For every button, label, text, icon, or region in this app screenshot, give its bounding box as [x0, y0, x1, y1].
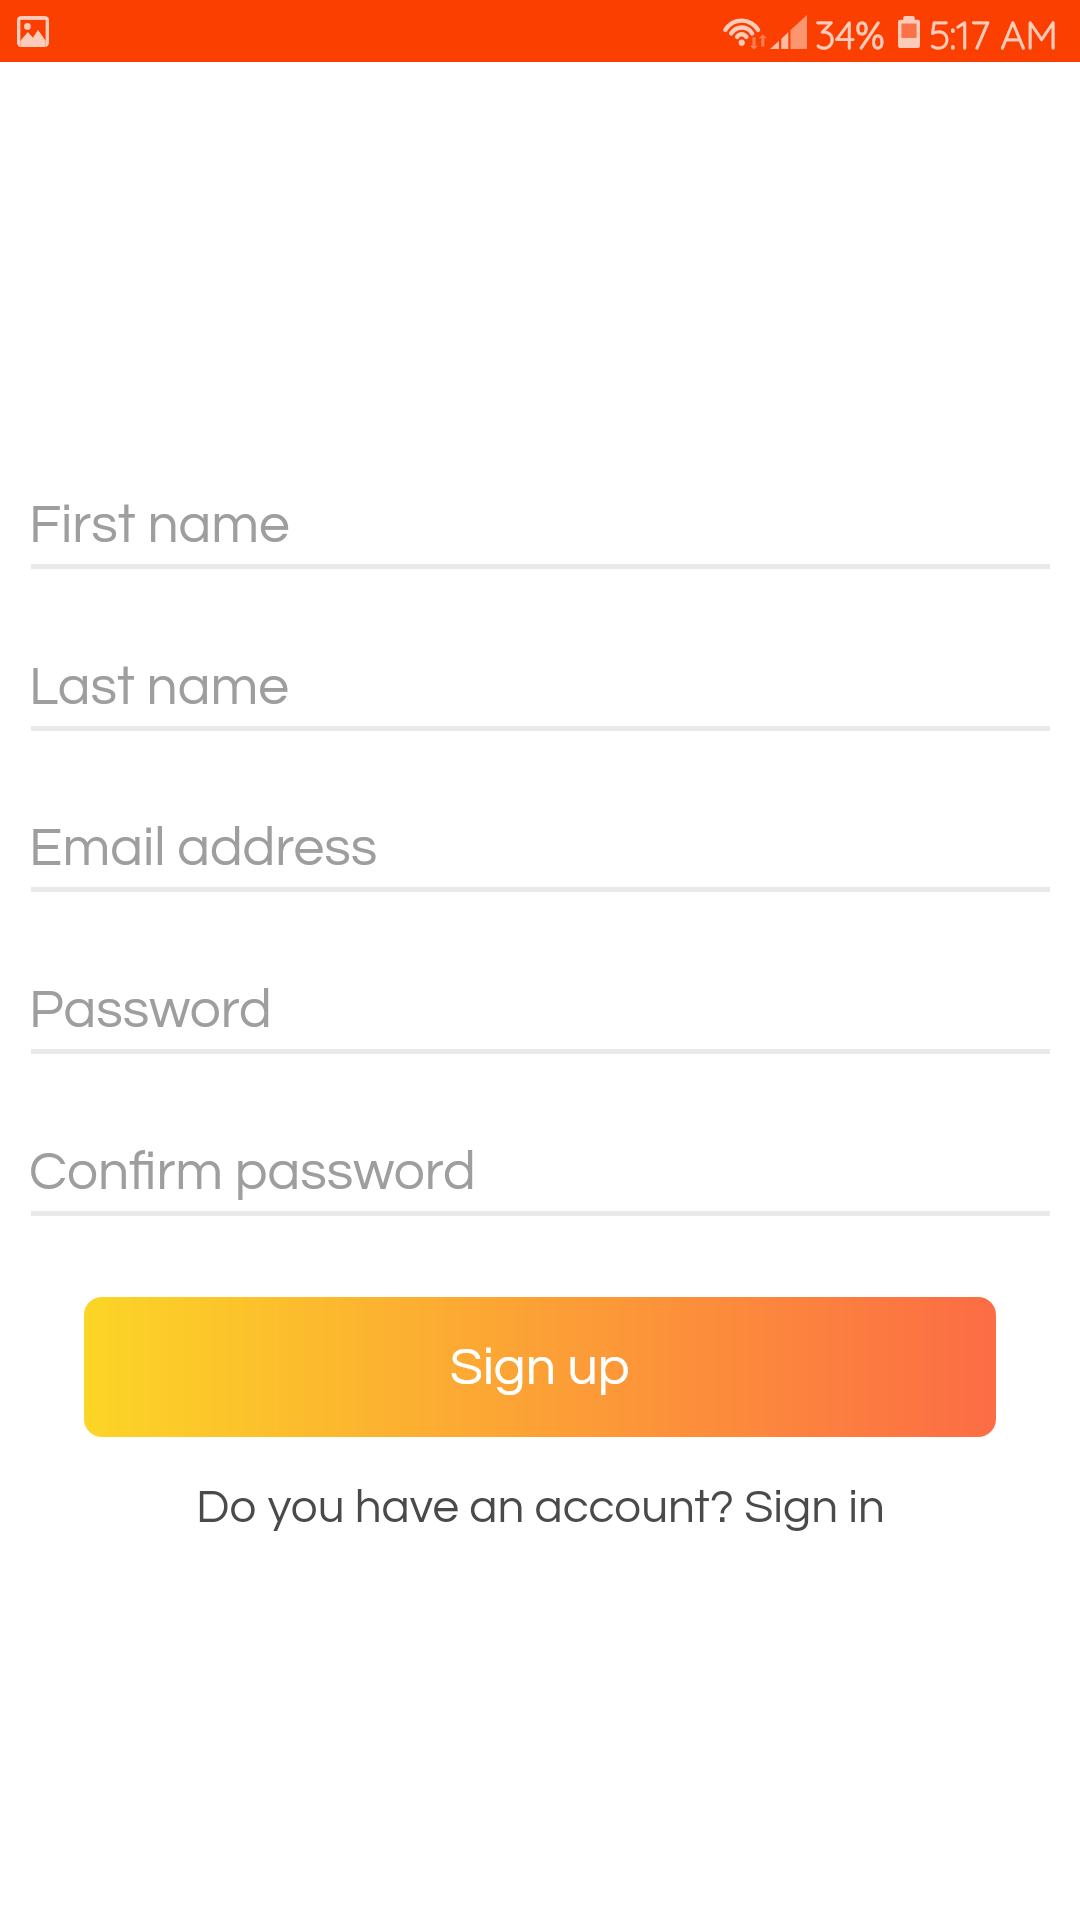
button[interactable]: Do you have an account? Sign in: [0, 1462, 1080, 1552]
staticText: Do you have an account? Sign in: [196, 1483, 885, 1532]
button[interactable]: Sign up: [84, 1297, 996, 1437]
staticText: Email address: [29, 820, 378, 877]
staticText: Password: [29, 982, 272, 1039]
other: Wi-Fi connected: [723, 14, 767, 49]
staticText: 34%: [815, 10, 885, 59]
button[interactable]: Last name: [29, 646, 1051, 740]
other: Mobile signal: [770, 15, 807, 49]
button[interactable]: First name: [29, 484, 1051, 578]
staticText: Sign up: [450, 1340, 630, 1395]
staticText: Last name: [29, 659, 289, 716]
staticText: Confirm password: [29, 1144, 476, 1201]
button[interactable]: Confirm password: [29, 1131, 1051, 1225]
other: Screenshot saved: [17, 16, 49, 47]
other: Battery 34 percent: [898, 16, 920, 48]
button[interactable]: Email address: [29, 807, 1051, 901]
button[interactable]: Password: [29, 969, 1051, 1063]
staticText: First name: [29, 497, 290, 554]
staticText: 5:17 AM: [929, 10, 1058, 59]
